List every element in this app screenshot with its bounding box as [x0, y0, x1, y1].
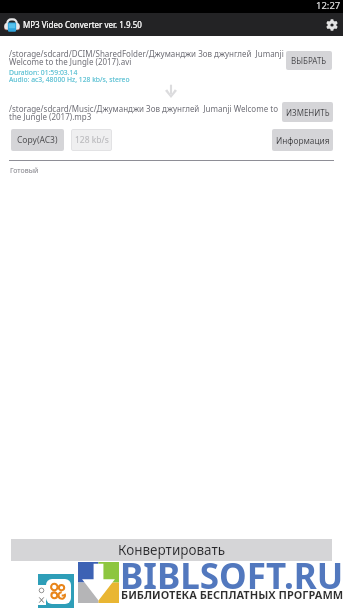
button[interactable]: Конвертировать: [11, 539, 332, 561]
button[interactable]: Информация: [272, 129, 333, 151]
staticText: Duration: 01:59:03.14: [9, 68, 78, 77]
button[interactable]: ИЗМЕНИТЬ: [282, 102, 333, 122]
staticText: БИБЛИОТЕКА БЕСПЛАТНЫХ ПРОГРАММ: [121, 587, 343, 602]
staticText: Готовый: [10, 166, 39, 176]
button[interactable]: Copy(AC3): [11, 129, 64, 151]
staticText: Конвертировать: [118, 541, 226, 559]
staticText: Audio: ac3, 48000 Hz, 128 kb/s, stereo: [9, 75, 130, 84]
staticText: ИЗМЕНИТЬ: [286, 107, 330, 118]
staticText: 12:27: [316, 0, 341, 12]
staticText: 128 kb/s: [75, 134, 109, 146]
staticText: MP3 Video Converter ver. 1.9.50: [23, 19, 142, 30]
staticText: BIBLSOFT.RU: [120, 552, 343, 600]
button[interactable]: ВЫБРАТЬ: [286, 51, 332, 70]
button[interactable]: 128 kb/s: [71, 129, 112, 151]
button[interactable]: Settings: [320, 13, 343, 36]
staticText: Copy(AC3): [17, 134, 58, 146]
staticText: ВЫБРАТЬ: [291, 55, 327, 66]
staticText: Информация: [276, 135, 330, 146]
staticText: /storage/sdcard/Music/Джуманджи Зов джун…: [9, 103, 281, 122]
staticText: /storage/sdcard/DCIM/SharedFolder/Джуман…: [9, 48, 285, 67]
